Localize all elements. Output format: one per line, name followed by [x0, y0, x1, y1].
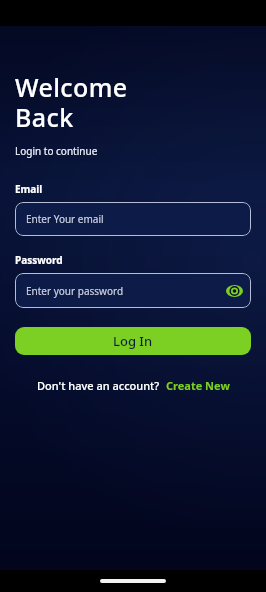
button[interactable]: Create New	[166, 378, 230, 393]
staticText: Enter Your email	[26, 212, 104, 226]
staticText: Login to continue	[15, 144, 98, 158]
staticText: Password	[15, 253, 63, 267]
staticText: Email	[15, 182, 43, 196]
staticText: Enter your password	[26, 284, 226, 298]
button[interactable]: Enter your password	[15, 273, 251, 308]
staticText: Welcome Back	[15, 70, 128, 135]
button[interactable]: Log In	[15, 327, 251, 355]
button[interactable]: Enter Your email	[15, 202, 251, 236]
staticText: Log In	[113, 332, 153, 350]
staticText: Don't have an account?	[37, 378, 160, 393]
